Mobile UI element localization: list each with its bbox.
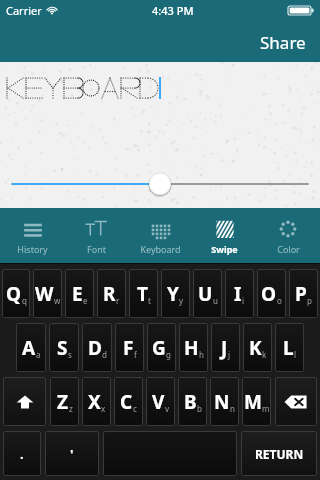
button[interactable]: K bbox=[243, 323, 272, 372]
button[interactable]: H bbox=[179, 323, 208, 372]
staticText: J bbox=[221, 335, 228, 361]
staticText: w bbox=[54, 295, 61, 306]
staticText: a bbox=[36, 349, 41, 360]
button[interactable]: RETURN bbox=[241, 431, 317, 476]
staticText: v bbox=[165, 403, 170, 414]
button[interactable]: Z bbox=[50, 377, 79, 426]
button[interactable]: O bbox=[257, 269, 286, 318]
staticText: g bbox=[166, 349, 171, 360]
button[interactable]: W bbox=[33, 269, 62, 318]
button[interactable]: F bbox=[115, 323, 144, 372]
button[interactable]: E bbox=[65, 269, 94, 318]
staticText: R bbox=[103, 281, 116, 307]
staticText: RETURN bbox=[255, 446, 304, 462]
button[interactable]: R bbox=[97, 269, 126, 318]
button[interactable]: Q bbox=[2, 269, 30, 318]
staticText: F bbox=[123, 335, 134, 361]
staticText: History bbox=[17, 243, 48, 255]
staticText: u bbox=[213, 295, 218, 306]
staticText: Keyboard bbox=[140, 243, 181, 255]
staticText: Font bbox=[87, 243, 106, 255]
staticText: A bbox=[22, 335, 36, 361]
staticText: Color bbox=[277, 243, 300, 255]
staticText: G bbox=[152, 335, 166, 361]
button[interactable]: B bbox=[178, 377, 207, 426]
button[interactable]: C bbox=[114, 377, 143, 426]
staticText: N bbox=[214, 389, 230, 415]
button[interactable]: Space bbox=[103, 431, 237, 476]
button[interactable]: I bbox=[225, 269, 254, 318]
staticText: 4:43 PM bbox=[152, 3, 194, 18]
staticText: I bbox=[234, 281, 242, 307]
button[interactable]: G bbox=[147, 323, 176, 372]
staticText: o bbox=[277, 295, 282, 306]
staticText: H bbox=[184, 335, 199, 361]
staticText: y bbox=[179, 295, 184, 306]
staticText: n bbox=[230, 403, 235, 414]
button[interactable]: Backspace bbox=[275, 377, 317, 426]
button[interactable]: S bbox=[49, 323, 79, 372]
staticText: U bbox=[198, 281, 213, 307]
button[interactable]: History bbox=[0, 208, 64, 264]
staticText: l bbox=[294, 349, 297, 360]
button[interactable]: P bbox=[289, 269, 318, 318]
staticText: q bbox=[22, 295, 27, 306]
button[interactable]: Share bbox=[256, 29, 310, 56]
button[interactable]: Swipe bbox=[192, 208, 256, 264]
button[interactable]: M bbox=[242, 377, 271, 426]
staticText: Y bbox=[167, 281, 179, 307]
staticText: Z bbox=[57, 389, 69, 415]
staticText: D bbox=[88, 335, 102, 361]
staticText: C bbox=[120, 389, 133, 415]
staticText: Carrier bbox=[6, 3, 42, 18]
staticText: c bbox=[133, 403, 137, 414]
staticText: T bbox=[137, 281, 148, 307]
button[interactable]: . bbox=[3, 431, 41, 476]
button[interactable]: V bbox=[146, 377, 175, 426]
staticText: M bbox=[244, 389, 262, 415]
staticText: s bbox=[68, 349, 72, 360]
button[interactable]: D bbox=[82, 323, 112, 372]
staticText: X bbox=[88, 389, 101, 415]
staticText: j bbox=[228, 349, 231, 360]
staticText: z bbox=[69, 403, 73, 414]
staticText: t bbox=[148, 295, 151, 306]
button[interactable]: Brush size slider bbox=[0, 160, 320, 208]
button[interactable]: J bbox=[211, 323, 240, 372]
button[interactable] bbox=[0, 62, 320, 160]
staticText: r bbox=[116, 295, 120, 306]
staticText: O bbox=[261, 281, 277, 307]
staticText: k bbox=[262, 349, 267, 360]
button[interactable]: Y bbox=[161, 269, 190, 318]
button[interactable]: Font bbox=[64, 208, 128, 264]
staticText: d bbox=[102, 349, 107, 360]
button[interactable]: U bbox=[193, 269, 222, 318]
staticText: m bbox=[262, 403, 270, 414]
staticText: B bbox=[184, 389, 197, 415]
button[interactable]: Shift bbox=[3, 377, 46, 426]
button[interactable]: ' bbox=[45, 431, 99, 476]
staticText: x bbox=[101, 403, 106, 414]
staticText: b bbox=[197, 403, 202, 414]
staticText: f bbox=[134, 349, 137, 360]
button[interactable]: Color bbox=[256, 208, 320, 264]
button[interactable]: X bbox=[82, 377, 111, 426]
staticText: L bbox=[283, 335, 294, 361]
staticText: Swipe bbox=[211, 243, 238, 255]
staticText: W bbox=[35, 281, 54, 307]
staticText: E bbox=[72, 281, 83, 307]
staticText: Share bbox=[260, 31, 306, 54]
staticText: h bbox=[199, 349, 204, 360]
button[interactable]: T bbox=[129, 269, 158, 318]
button[interactable]: A bbox=[16, 323, 46, 372]
button[interactable]: L bbox=[275, 323, 304, 372]
button[interactable]: N bbox=[210, 377, 239, 426]
staticText: P bbox=[295, 281, 307, 307]
staticText: S bbox=[57, 335, 68, 361]
button[interactable]: Keyboard bbox=[128, 208, 192, 264]
staticText: e bbox=[83, 295, 88, 306]
staticText: . bbox=[20, 445, 24, 463]
staticText: V bbox=[152, 389, 165, 415]
staticText: ' bbox=[70, 445, 74, 463]
staticText: K bbox=[249, 335, 262, 361]
